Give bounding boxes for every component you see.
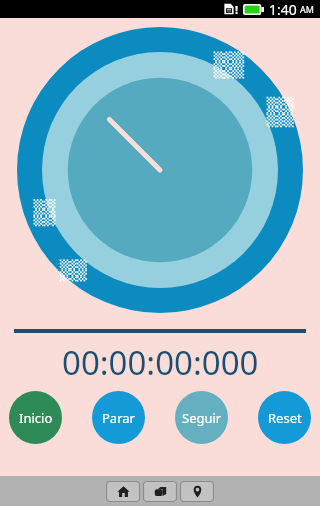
button[interactable]: Seguir [175, 391, 228, 444]
button[interactable]: Location [180, 481, 214, 502]
staticText: Inicio [19, 409, 53, 427]
button[interactable]: Reset [258, 391, 311, 444]
staticText: 1:40 [269, 0, 297, 18]
staticText: ! [235, 2, 239, 17]
staticText: Reset [268, 409, 302, 427]
button[interactable]: Parar [92, 391, 145, 444]
button[interactable]: Inicio [9, 391, 62, 444]
staticText: 00:00:00:000 [62, 340, 259, 385]
staticText: Parar [102, 409, 135, 427]
staticText: Seguir [182, 409, 222, 427]
staticText: AM [300, 3, 314, 15]
button[interactable]: Recent apps [143, 481, 177, 502]
button[interactable]: Home [106, 481, 140, 502]
